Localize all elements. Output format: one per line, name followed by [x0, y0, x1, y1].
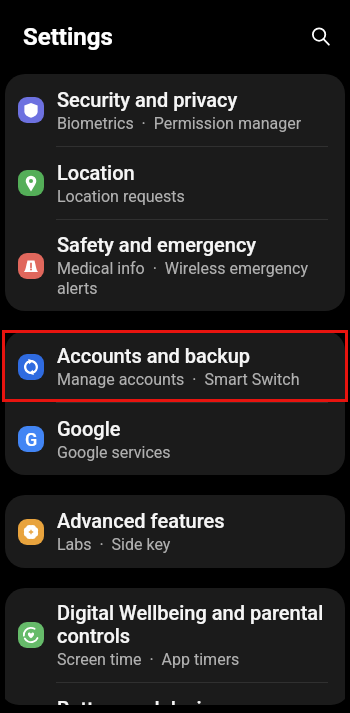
- staticText: Digital Wellbeing and parental controls: [57, 601, 332, 647]
- staticText: Google services: [57, 443, 171, 462]
- staticText: Labs · Side key: [57, 535, 171, 554]
- button[interactable]: Location: [5, 147, 345, 219]
- staticText: Security and privacy: [57, 88, 238, 111]
- staticText: Location requests: [57, 187, 185, 206]
- button[interactable]: Advanced features: [5, 495, 345, 568]
- button[interactable]: G: [5, 403, 345, 475]
- button[interactable]: Search: [304, 20, 338, 54]
- staticText: Biometrics · Permission manager: [57, 114, 302, 133]
- button[interactable]: Battery and device care: [5, 683, 345, 713]
- staticText: G: [25, 429, 38, 450]
- button[interactable]: Safety and emergency: [5, 220, 345, 311]
- button[interactable]: Digital Wellbeing and parental controls: [5, 588, 345, 682]
- staticText: Battery and device care: [57, 697, 267, 713]
- staticText: Accounts and backup: [57, 344, 251, 367]
- staticText: Location: [57, 161, 135, 184]
- button[interactable]: Accounts and backup: [5, 331, 345, 402]
- staticText: Manage accounts · Smart Switch: [57, 370, 300, 389]
- button[interactable]: Security and privacy: [5, 74, 345, 146]
- staticText: Medical info · Wireless emergency alerts: [57, 259, 332, 298]
- staticText: Google: [57, 417, 121, 440]
- staticText: Settings: [23, 23, 113, 51]
- staticText: Screen time · App timers: [57, 650, 240, 669]
- staticText: Advanced features: [57, 509, 225, 532]
- staticText: Safety and emergency: [57, 233, 257, 256]
